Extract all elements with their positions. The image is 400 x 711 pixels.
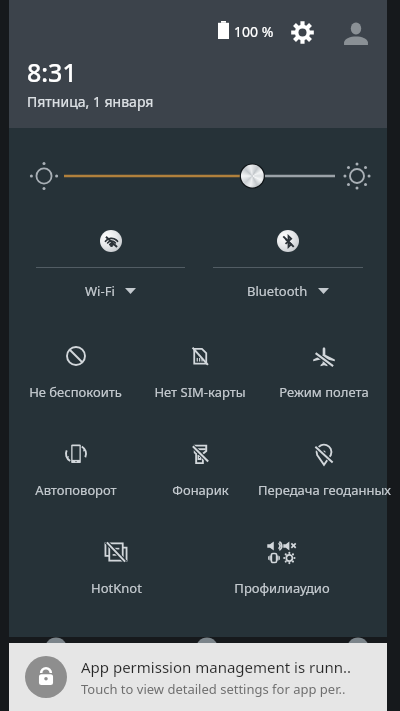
button[interactable]: Auto brightness [30, 162, 58, 190]
button[interactable]: Автоповорот [13, 427, 138, 499]
button[interactable]: Профилиаудио [219, 525, 345, 597]
button[interactable]: Wi-Fi [22, 212, 199, 300]
button[interactable]: Bluetooth [199, 212, 377, 300]
staticText: Wi-Fi [85, 282, 115, 300]
button[interactable]: App permission management is runn.. [9, 643, 387, 711]
staticText: 100 % [234, 22, 274, 41]
staticText: App permission management is runn.. [81, 657, 352, 677]
staticText: Передача геоданных [258, 481, 391, 499]
staticText: 8:31 [27, 55, 77, 89]
button[interactable]: Нет SIM-карты [138, 329, 262, 401]
staticText: Профилиаудио [234, 579, 330, 597]
button[interactable]: HotKnot [53, 525, 179, 597]
button[interactable]: Фонарик [138, 427, 262, 499]
staticText: Нет SIM-карты [154, 383, 246, 401]
staticText: Режим полета [279, 383, 369, 401]
staticText: Bluetooth [247, 282, 308, 300]
button[interactable]: User profile [342, 19, 370, 47]
staticText: Пятница, 1 января [27, 92, 154, 111]
button[interactable]: Brightness [343, 162, 371, 190]
button[interactable]: Не беспокоить [13, 329, 138, 401]
staticText: HotKnot [91, 579, 142, 597]
button[interactable]: Режим полета [262, 329, 386, 401]
staticText: Автоповорот [35, 481, 117, 499]
staticText: Touch to view detailed settings for app … [81, 680, 346, 698]
button[interactable]: Settings [289, 19, 316, 46]
button[interactable]: Brightness slider [61, 162, 338, 190]
staticText: Не беспокоить [29, 383, 122, 401]
button[interactable]: Передача геоданных [262, 427, 386, 499]
staticText: Фонарик [172, 481, 229, 499]
